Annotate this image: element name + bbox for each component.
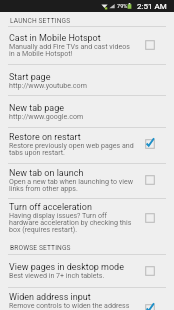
staticText: New tab on launch: [9, 168, 84, 179]
button[interactable]: Cast in Mobile Hotspot: [0, 27, 174, 65]
staticText: 79%: [117, 3, 128, 10]
staticText: View pages in desktop mode: [9, 262, 124, 273]
staticText: Best viewed in 7+ inch tablets.: [9, 271, 105, 279]
staticText: LAUNCH SETTINGS: [10, 17, 71, 25]
staticText: http://www.youtube.com: [9, 81, 87, 89]
staticText: Remove controls to widen the address: [9, 301, 130, 308]
staticText: BROWSE SETTINGS: [10, 244, 71, 252]
staticText: 2:51 AM: [137, 2, 167, 11]
other: Unchecked: [138, 261, 162, 281]
other: Unchecked: [138, 35, 162, 55]
other: Unchecked: [138, 170, 162, 190]
button[interactable]: New tab on launch: [0, 164, 174, 199]
staticText: New tab page: [9, 103, 65, 114]
staticText: Restore previously open web pages and ta…: [9, 141, 134, 156]
other: Checked: [138, 134, 162, 154]
staticText: Manually add Fire TVs and cast videos in…: [9, 42, 130, 57]
staticText: Widen address input: [9, 292, 91, 303]
button[interactable]: Widen address input: [0, 288, 174, 310]
staticText: Start page: [9, 72, 51, 83]
staticText: Open a new tab when launching to view li…: [9, 177, 134, 192]
button[interactable]: Start page: [0, 65, 174, 96]
other: Checked: [138, 299, 162, 310]
staticText: Restore on restart: [9, 132, 81, 143]
other: Unchecked: [138, 208, 162, 228]
button[interactable]: Turn off acceleration: [0, 199, 174, 241]
button[interactable]: New tab page: [0, 96, 174, 128]
staticText: Turn off acceleration: [9, 202, 92, 213]
button[interactable]: View pages in desktop mode: [0, 255, 174, 288]
staticText: Having display issues? Turn off hardware…: [9, 211, 132, 233]
staticText: http://www.google.com: [9, 112, 84, 120]
button[interactable]: Restore on restart: [0, 128, 174, 164]
staticText: Cast in Mobile Hotspot: [9, 33, 101, 44]
